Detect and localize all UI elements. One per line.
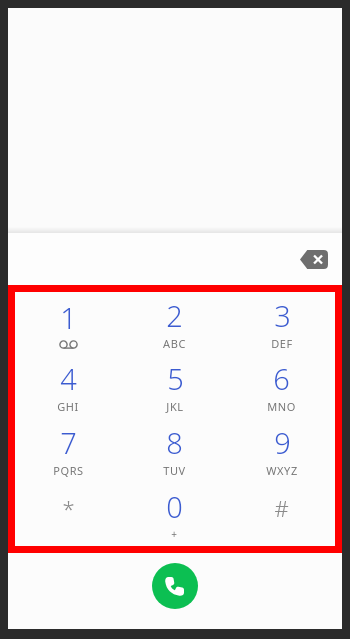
staticText: 1 (60, 298, 77, 337)
staticText: 4 (60, 359, 77, 398)
staticText: + (171, 527, 178, 541)
button[interactable]: 8 (121, 418, 228, 482)
staticText: ABC (163, 336, 186, 351)
staticText: PQRS (53, 463, 84, 478)
button[interactable]: 9 (228, 418, 335, 482)
button[interactable]: 0 (121, 482, 228, 546)
staticText: WXYZ (266, 463, 298, 478)
staticText: JKL (166, 399, 184, 414)
button[interactable]: Call (152, 563, 198, 609)
staticText: 0 (166, 487, 183, 526)
staticText: 9 (274, 423, 291, 462)
button[interactable]: 5 (121, 355, 228, 418)
staticText: # (274, 493, 289, 523)
button[interactable]: Backspace (292, 242, 336, 276)
staticText: 8 (166, 423, 183, 462)
staticText: 7 (60, 423, 77, 462)
button[interactable]: 6 (228, 355, 335, 418)
staticText: 2 (166, 296, 183, 335)
button[interactable]: 1 (15, 292, 121, 355)
staticText: 5 (167, 359, 184, 398)
staticText: TUV (163, 463, 186, 478)
staticText: 3 (274, 296, 291, 335)
staticText: DEF (271, 336, 293, 351)
staticText: GHI (57, 399, 79, 414)
button[interactable]: 7 (15, 418, 121, 482)
staticText: 6 (273, 359, 290, 398)
button[interactable]: 3 (228, 292, 335, 355)
button[interactable]: # (228, 482, 335, 546)
staticText: MNO (267, 399, 296, 414)
staticText: * (62, 493, 75, 523)
button[interactable]: * (15, 482, 121, 546)
button[interactable]: 4 (15, 355, 121, 418)
button[interactable]: 2 (121, 292, 228, 355)
